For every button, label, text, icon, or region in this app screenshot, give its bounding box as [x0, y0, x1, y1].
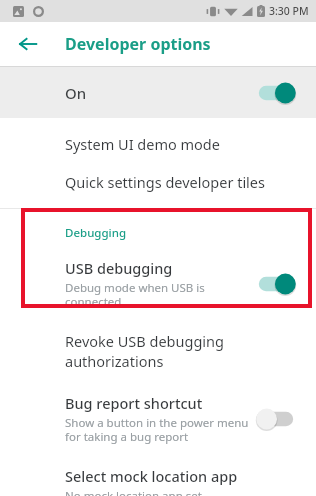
staticText: Show a button in the power menu for taki… — [65, 415, 249, 444]
button[interactable]: Switch on — [254, 271, 298, 297]
button[interactable]: On — [0, 67, 316, 118]
staticText: Bug report shortcut — [65, 393, 203, 413]
staticText: Revoke USB debugging authorizations — [65, 331, 302, 371]
staticText: No mock location app set — [65, 488, 202, 496]
button[interactable]: Bug report shortcut — [0, 393, 316, 444]
button[interactable]: System UI demo mode — [0, 134, 316, 154]
button[interactable]: Select mock location app — [0, 466, 316, 496]
staticText: USB debugging — [65, 258, 173, 278]
staticText: Debugging — [65, 225, 127, 241]
staticText: Quick settings developer tiles — [65, 172, 265, 192]
staticText: Select mock location app — [65, 466, 238, 486]
button[interactable]: Revoke USB debugging authorizations — [0, 331, 316, 371]
staticText: System UI demo mode — [65, 134, 220, 154]
staticText: Debug mode when USB is connected — [65, 280, 205, 309]
staticText: 3:30 PM — [269, 4, 309, 18]
button[interactable]: Switch on — [254, 80, 298, 106]
button[interactable]: Back — [13, 29, 43, 59]
button[interactable]: USB debugging — [0, 258, 316, 309]
button[interactable]: Quick settings developer tiles — [0, 172, 316, 192]
staticText: Developer options — [65, 33, 211, 55]
staticText: On — [65, 83, 254, 103]
button[interactable]: Switch off — [254, 406, 298, 432]
